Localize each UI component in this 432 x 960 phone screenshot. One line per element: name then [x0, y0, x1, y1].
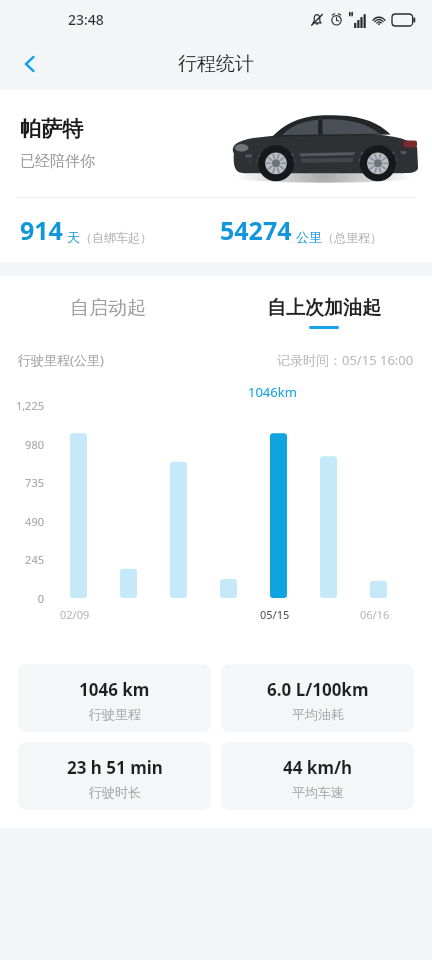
staticText: 平均车速 [292, 784, 344, 800]
staticText: 1,225 [0, 398, 44, 413]
staticText: （自绑车起） [80, 230, 152, 245]
staticText: 23 h 51 min [67, 756, 163, 779]
staticText: 自上次加油起 [267, 296, 381, 320]
staticText: 06/16 [360, 607, 390, 622]
staticText: 490 [0, 514, 44, 529]
staticText: 平均油耗 [292, 706, 344, 722]
staticText: （总里程） [322, 230, 382, 245]
staticText: 行驶里程(公里) [18, 351, 104, 369]
button[interactable]: Back [8, 42, 52, 86]
staticText: 23:48 [68, 10, 104, 29]
staticText: 行驶时长 [89, 784, 141, 800]
staticText: 44 km/h [283, 756, 353, 779]
staticText: 帕萨特 [20, 116, 83, 142]
staticText: 公里 [296, 229, 322, 245]
staticText: 245 [0, 552, 44, 567]
staticText: 914 [20, 213, 63, 247]
staticText: 已经陪伴你 [20, 152, 95, 171]
staticText: 735 [0, 475, 44, 490]
staticText: 980 [0, 437, 44, 452]
staticText: 1046 km [79, 678, 150, 701]
button[interactable]: 自上次加油起 [216, 292, 432, 333]
button[interactable]: 6.0 L/100km [221, 664, 414, 732]
staticText: 1046km [248, 383, 297, 401]
staticText: 02/09 [60, 607, 90, 622]
staticText: 0 [0, 591, 44, 606]
button[interactable]: 44 km/h [221, 742, 414, 810]
button[interactable]: 23 h 51 min [18, 742, 211, 810]
staticText: 记录时间：05/15 16:00 [277, 351, 414, 369]
button[interactable]: 自启动起 [0, 292, 216, 333]
staticText: 行程统计 [178, 52, 254, 76]
staticText: 天 [67, 229, 80, 245]
button[interactable]: 1046 km [18, 664, 211, 732]
staticText: 行驶里程 [89, 706, 141, 722]
staticText: 6.0 L/100km [267, 678, 369, 701]
staticText: 54274 [220, 213, 292, 247]
staticText: 05/15 [260, 607, 290, 622]
staticText: 自启动起 [70, 296, 146, 320]
